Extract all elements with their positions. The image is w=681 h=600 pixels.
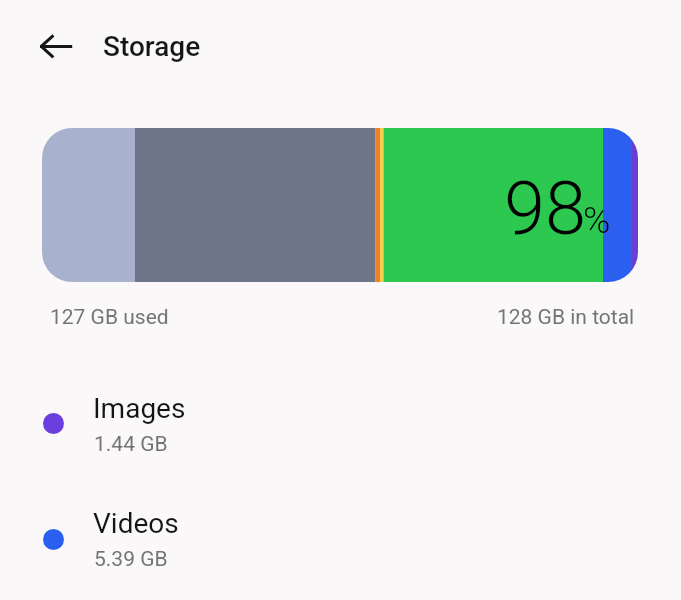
staticText: 5.39 GB	[94, 547, 168, 572]
button[interactable]: Storage	[92, 18, 212, 75]
staticText: Videos	[93, 507, 179, 540]
staticText: 1.44 GB	[94, 432, 168, 457]
staticText: 127 GB used	[50, 305, 169, 330]
button[interactable]: Images	[0, 374, 681, 469]
button[interactable]: Back	[24, 14, 88, 78]
staticText: 98	[504, 165, 587, 252]
staticText: Images	[93, 392, 186, 425]
staticText: %	[583, 199, 611, 242]
button[interactable]: Videos	[0, 489, 681, 584]
staticText: Storage	[103, 30, 201, 63]
button[interactable]: Storage used: 98 percent of 128 GB	[42, 128, 638, 282]
staticText: 128 GB in total	[497, 305, 635, 330]
